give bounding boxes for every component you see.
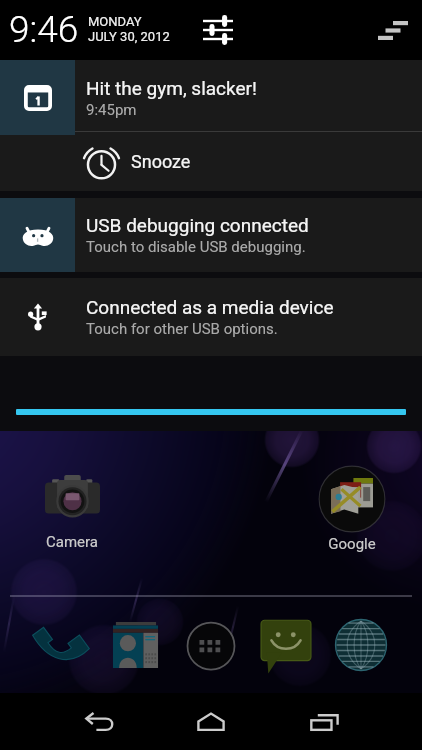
button[interactable]: Connected as a media device [0,278,422,356]
button[interactable]: Phone [32,618,86,672]
button[interactable]: Google [316,464,388,553]
staticText: Google [328,535,376,553]
button[interactable]: Recent apps [288,693,362,750]
button[interactable]: Camera [36,473,108,551]
button[interactable]: Snooze [0,135,422,191]
button[interactable]: Browser [333,617,389,673]
staticText: Touch to disable USB debugging. [86,238,306,256]
staticText: JULY 30, 2012 [88,29,170,44]
button[interactable]: Apps [183,618,239,674]
staticText: USB debugging connected [86,214,309,236]
staticText: MONDAY [88,14,142,29]
staticText: Connected as a media device [86,296,334,318]
button[interactable]: USB debugging connected [0,198,422,272]
button[interactable]: Messaging [258,618,314,674]
staticText: Snooze [131,151,191,172]
staticText: 9:46 [9,8,79,51]
button[interactable]: Clear all notifications [369,0,417,60]
button[interactable]: People [108,618,162,672]
staticText: 9:45pm [86,101,137,119]
staticText: Camera [46,533,98,551]
button[interactable]: Quick settings [194,0,242,60]
staticText: Hit the gym, slacker! [86,77,257,99]
button[interactable]: Back [63,693,137,750]
staticText: Touch for other USB options. [86,320,278,338]
button[interactable]: Hit the gym, slacker! [0,60,422,135]
button[interactable]: Home [174,693,248,750]
